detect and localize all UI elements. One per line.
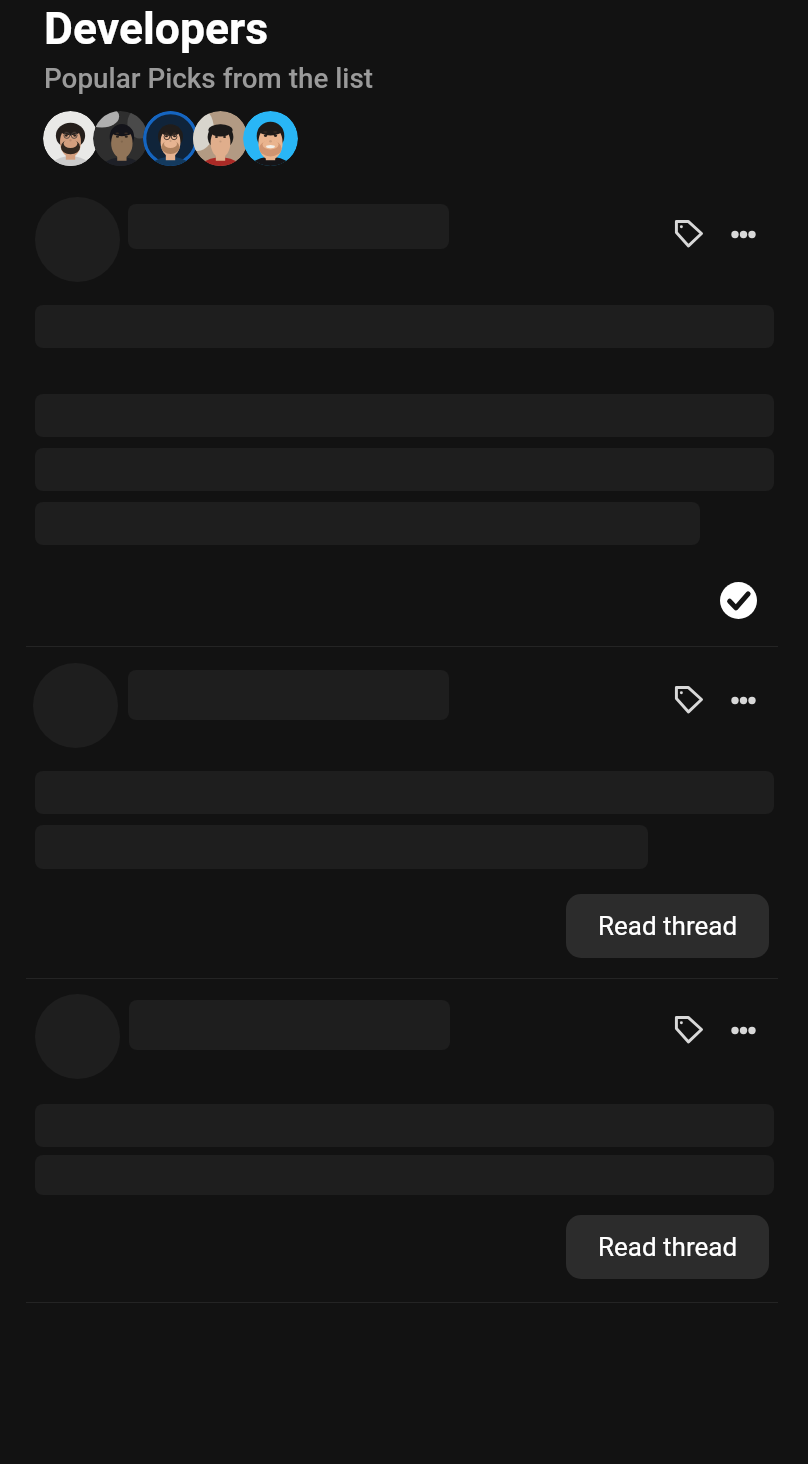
button[interactable]: Developer avatar [93, 111, 148, 166]
button[interactable]: Developer avatar [243, 111, 298, 166]
staticText: Popular Picks from the list [44, 62, 374, 95]
button[interactable]: More options [719, 676, 767, 724]
button[interactable]: More options [719, 210, 767, 258]
button[interactable]: Read thread [566, 1215, 769, 1279]
button[interactable]: Developer avatar [143, 111, 198, 166]
button[interactable]: Tag [664, 209, 712, 257]
button[interactable]: Read thread [566, 894, 769, 958]
button[interactable]: Developer avatar [193, 111, 248, 166]
button[interactable]: Developer avatar [43, 111, 98, 166]
button[interactable]: More options [719, 1006, 767, 1054]
button[interactable]: Verified [720, 582, 757, 619]
button[interactable]: Tag [664, 675, 712, 723]
button[interactable]: Tag [664, 1005, 712, 1053]
staticText: Developers [44, 3, 269, 55]
staticText: Read thread [598, 911, 738, 941]
staticText: Read thread [598, 1232, 738, 1262]
